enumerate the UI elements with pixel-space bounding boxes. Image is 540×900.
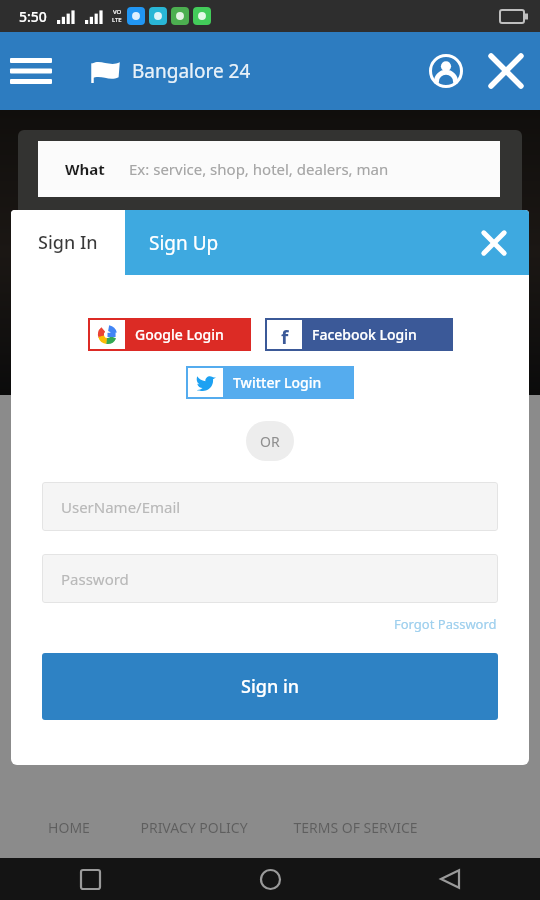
button[interactable]: Back — [360, 858, 540, 900]
button[interactable]: Home — [180, 858, 360, 900]
button[interactable]: Sign Up — [125, 210, 529, 275]
button[interactable]: Close dialog — [472, 221, 516, 265]
staticText: Forgot Password — [394, 615, 497, 633]
staticText: Sign In — [38, 230, 98, 255]
staticText: HOME — [48, 818, 90, 837]
staticText: UserName/Email — [61, 497, 181, 517]
staticText: TERMS OF SERVICE — [293, 818, 418, 837]
staticText: Sign Up — [149, 230, 219, 256]
staticText: Ex: service, shop, hotel, dealers, man — [129, 159, 389, 179]
staticText: PRIVACY POLICY — [140, 818, 248, 837]
staticText: VO — [113, 8, 122, 16]
staticText: Facebook Login — [312, 325, 417, 344]
button[interactable]: What — [38, 141, 500, 197]
button[interactable]: Forgot Password — [394, 615, 497, 633]
button[interactable]: Close — [480, 45, 532, 97]
button[interactable]: TERMS OF SERVICE — [293, 818, 418, 837]
staticText: f — [281, 325, 289, 344]
button[interactable]: Recents — [0, 858, 180, 900]
staticText: Sign in — [241, 674, 300, 699]
staticText: Google Login — [135, 325, 224, 344]
staticText: LTE — [112, 16, 122, 24]
staticText: Password — [61, 569, 129, 589]
staticText: OR — [260, 432, 280, 451]
staticText: Bangalore 24 — [132, 58, 251, 84]
button[interactable]: Password — [42, 554, 498, 603]
button[interactable]: Sign In — [11, 210, 125, 275]
button[interactable]: f — [265, 318, 453, 351]
staticText: Twitter Login — [233, 373, 322, 392]
button[interactable]: HOME — [48, 818, 90, 837]
button[interactable]: Google Login — [88, 318, 251, 351]
button[interactable]: PRIVACY POLICY — [140, 818, 248, 837]
button[interactable]: Menu — [0, 40, 62, 102]
button[interactable]: Sign in — [42, 653, 498, 720]
button[interactable]: Account — [418, 43, 474, 99]
button[interactable]: UserName/Email — [42, 482, 498, 531]
button[interactable]: Twitter Login — [186, 366, 354, 399]
staticText: What — [65, 159, 105, 179]
staticText: 5:50 — [19, 7, 47, 26]
